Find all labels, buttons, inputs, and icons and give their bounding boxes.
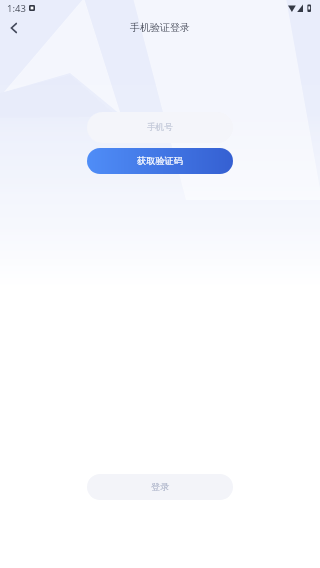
button[interactable]: 获取验证码 xyxy=(87,148,233,174)
staticText: 1:43 xyxy=(7,2,26,15)
staticText: 登录 xyxy=(151,481,170,493)
staticText: 手机号 xyxy=(147,122,173,133)
staticText: 获取验证码 xyxy=(137,155,183,167)
button[interactable]: 手机号 xyxy=(87,112,233,143)
button[interactable]: 登录 xyxy=(87,474,233,500)
staticText: 手机验证登录 xyxy=(130,21,190,34)
button[interactable]: Back xyxy=(0,16,28,39)
